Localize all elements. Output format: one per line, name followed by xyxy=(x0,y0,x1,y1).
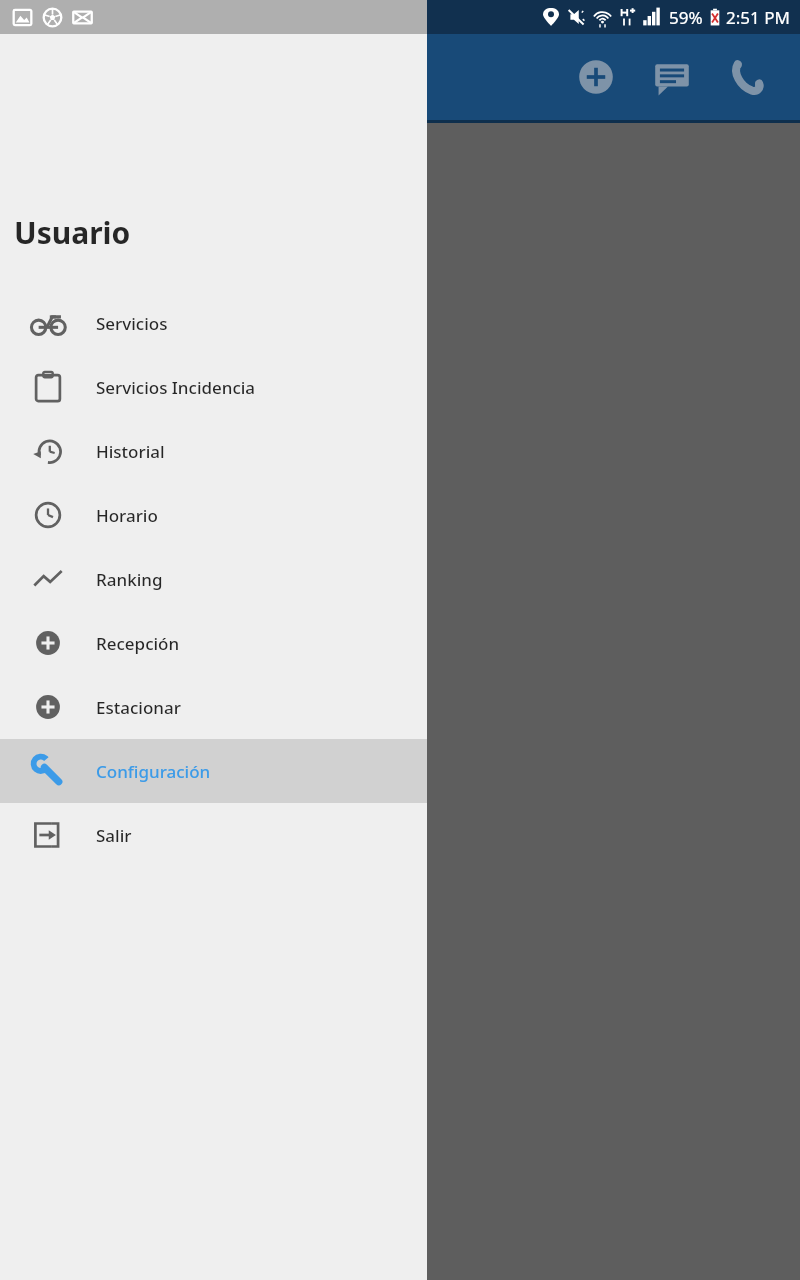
button[interactable]: Add xyxy=(566,47,626,107)
staticText: 2:51 PM xyxy=(726,6,790,29)
staticText: Estacionar xyxy=(96,696,181,719)
staticText: Servicios Incidencia xyxy=(96,376,256,399)
staticText: Historial xyxy=(96,440,165,463)
button[interactable]: Servicios Incidencia xyxy=(0,355,427,419)
staticText: Salir xyxy=(96,824,132,847)
staticText: Usuario xyxy=(14,212,131,253)
button[interactable]: Horario xyxy=(0,483,427,547)
staticText: Horario xyxy=(96,504,158,527)
button[interactable]: Estacionar xyxy=(0,675,427,739)
button[interactable]: Salir xyxy=(0,803,427,867)
staticText: Configuración xyxy=(96,760,211,783)
staticText: 59% xyxy=(669,6,703,29)
staticText: Servicios xyxy=(96,312,168,335)
button[interactable]: Recepción xyxy=(0,611,427,675)
staticText: Recepción xyxy=(96,632,180,655)
button[interactable]: Historial xyxy=(0,419,427,483)
staticText: Ranking xyxy=(96,568,163,591)
button[interactable]: Messages xyxy=(642,47,702,107)
button[interactable]: Ranking xyxy=(0,547,427,611)
button[interactable]: Servicios xyxy=(0,291,427,355)
button[interactable]: Call xyxy=(718,47,778,107)
button[interactable]: Configuración xyxy=(0,739,427,803)
